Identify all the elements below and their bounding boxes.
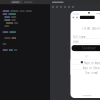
staticText: or [85, 54, 88, 58]
button[interactable]: Sign in Apple [70, 60, 100, 65]
staticText: Sign in Apple [84, 61, 100, 65]
staticText: Email [73, 40, 79, 43]
staticText: 9:41 [73, 12, 80, 16]
staticText: Use email [85, 71, 98, 75]
staticText: Continue [82, 46, 96, 50]
staticText: Sign in Google [82, 66, 100, 70]
button[interactable]: Use email [70, 70, 100, 75]
staticText: Full name [73, 35, 86, 39]
button[interactable]: Sign in Google [70, 65, 100, 70]
staticText: Create account [82, 27, 100, 30]
button[interactable]: Continue [72, 45, 100, 51]
